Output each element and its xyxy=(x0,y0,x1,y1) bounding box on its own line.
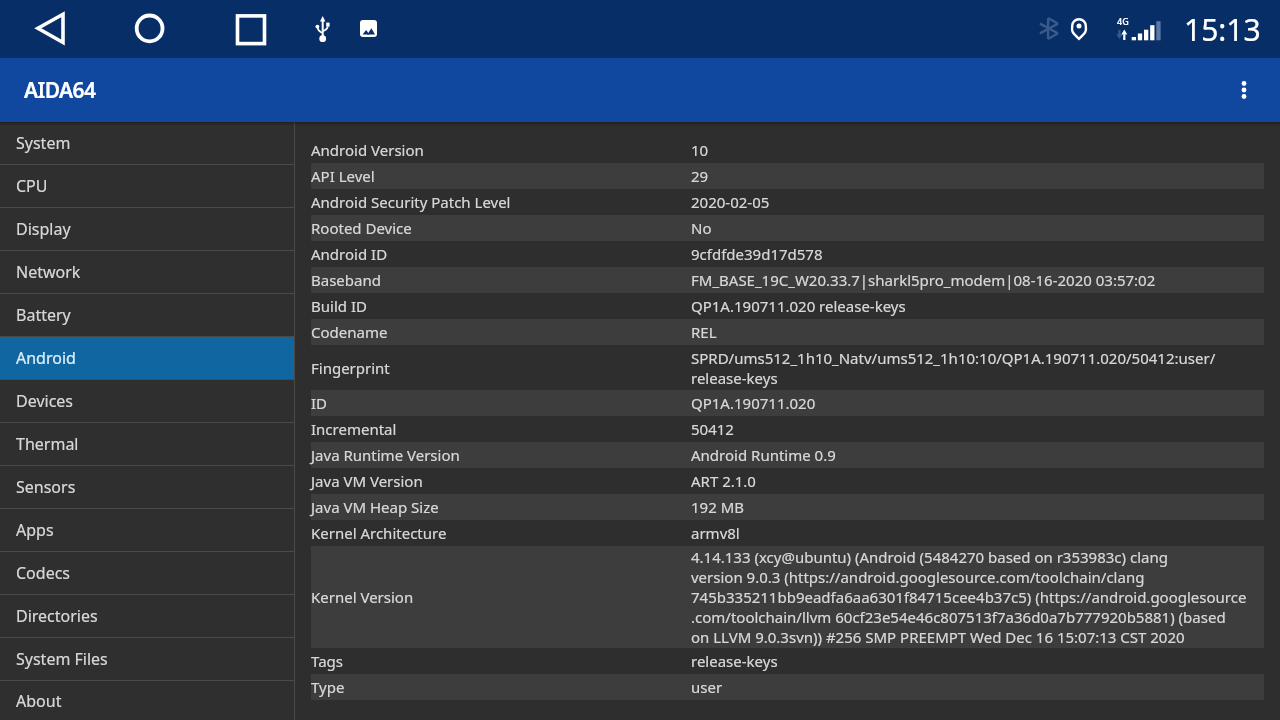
other: Bluetooth off xyxy=(1040,18,1058,39)
staticText: 50412 xyxy=(691,419,734,439)
staticText: QP1A.190711.020 xyxy=(691,393,816,413)
staticText: Display xyxy=(16,218,71,240)
button[interactable]: Codecs xyxy=(0,552,294,594)
button[interactable]: CPU xyxy=(0,165,294,207)
button[interactable]: Incremental xyxy=(311,416,1264,442)
staticText: Codename xyxy=(311,322,691,342)
staticText: QP1A.190711.020 release-keys xyxy=(691,296,906,316)
button[interactable]: Codename xyxy=(311,319,1264,345)
button[interactable]: Android Security Patch Level xyxy=(311,189,1264,215)
button[interactable]: Home xyxy=(128,6,172,50)
staticText: Codecs xyxy=(16,562,71,584)
button[interactable]: Recent apps xyxy=(228,6,272,50)
button[interactable]: Kernel Version xyxy=(311,546,1264,648)
staticText: About xyxy=(16,690,62,712)
other: USB connected xyxy=(310,14,336,44)
staticText: Android xyxy=(16,347,76,369)
staticText: 4.14.133 (xcy@ubuntu) (Android (5484270 … xyxy=(691,547,1168,567)
staticText: FM_BASE_19C_W20.33.7|sharkl5pro_modem|08… xyxy=(691,270,1156,290)
button[interactable]: Build ID xyxy=(311,293,1264,319)
button[interactable]: Android Version xyxy=(311,137,1264,163)
button[interactable]: Java VM Heap Size xyxy=(311,494,1264,520)
staticText: Directories xyxy=(16,605,98,627)
staticText: Build ID xyxy=(311,296,691,316)
staticText: Android Runtime 0.9 xyxy=(691,445,836,465)
staticText: API Level xyxy=(311,166,691,186)
staticText: 745b335211bb9eadfa6aa6301f84715cee4b37c5… xyxy=(691,587,1247,607)
staticText: 15:13 xyxy=(1184,9,1261,50)
button[interactable]: About xyxy=(0,681,294,720)
staticText: 4G xyxy=(1117,15,1129,27)
button[interactable]: Display xyxy=(0,208,294,250)
staticText: 2020-02-05 xyxy=(691,192,770,212)
other: Screenshot captured xyxy=(360,20,377,37)
staticText: Java VM Version xyxy=(311,471,691,491)
staticText: 9cfdfde39d17d578 xyxy=(691,244,823,264)
staticText: ID xyxy=(311,393,691,413)
button[interactable]: API Level xyxy=(311,163,1264,189)
staticText: Incremental xyxy=(311,419,691,439)
staticText: System Files xyxy=(16,648,108,670)
staticText: Kernel Architecture xyxy=(311,523,691,543)
staticText: Network xyxy=(16,261,81,283)
button[interactable]: Android ID xyxy=(311,241,1264,267)
staticText: Android ID xyxy=(311,244,691,264)
button[interactable]: Thermal xyxy=(0,423,294,465)
staticText: AIDA64 xyxy=(24,76,96,105)
button[interactable]: System xyxy=(0,122,294,164)
button[interactable]: Tags xyxy=(311,648,1264,674)
staticText: Java VM Heap Size xyxy=(311,497,691,517)
staticText: Kernel Version xyxy=(311,587,691,607)
button[interactable]: Type xyxy=(311,674,1264,700)
button[interactable]: Directories xyxy=(0,595,294,637)
other: Location on xyxy=(1071,18,1087,40)
button[interactable]: Android xyxy=(0,337,294,379)
staticText: user xyxy=(691,677,723,697)
button[interactable]: Apps xyxy=(0,509,294,551)
other: Mobile signal 4G xyxy=(1116,20,1168,42)
staticText: Tags xyxy=(311,651,691,671)
staticText: Android Security Patch Level xyxy=(311,192,691,212)
staticText: System xyxy=(16,132,71,154)
staticText: on LLVM 9.0.3svn)) #256 SMP PREEMPT Wed … xyxy=(691,627,1185,647)
staticText: CPU xyxy=(16,175,48,197)
button[interactable]: Back xyxy=(28,6,72,50)
button[interactable]: Rooted Device xyxy=(311,215,1264,241)
staticText: 192 MB xyxy=(691,497,744,517)
staticText: SPRD/ums512_1h10_Natv/ums512_1h10:10/QP1… xyxy=(691,348,1216,368)
staticText: REL xyxy=(691,322,717,342)
button[interactable]: Devices xyxy=(0,380,294,422)
staticText: release-keys xyxy=(691,368,778,388)
staticText: Java Runtime Version xyxy=(311,445,691,465)
staticText: version 9.0.3 (https://android.googlesou… xyxy=(691,567,1145,587)
button[interactable]: More options xyxy=(1226,72,1262,108)
staticText: Thermal xyxy=(16,433,79,455)
button[interactable]: Kernel Architecture xyxy=(311,520,1264,546)
staticText: release-keys xyxy=(691,651,778,671)
button[interactable]: Java VM Version xyxy=(311,468,1264,494)
button[interactable]: Java Runtime Version xyxy=(311,442,1264,468)
button[interactable]: Battery xyxy=(0,294,294,336)
staticText: Apps xyxy=(16,519,54,541)
button[interactable]: Network xyxy=(0,251,294,293)
staticText: Battery xyxy=(16,304,71,326)
staticText: armv8l xyxy=(691,523,740,543)
staticText: 29 xyxy=(691,166,709,186)
staticText: .com/toolchain/llvm 60cf23e54e46c807513f… xyxy=(691,607,1226,627)
staticText: Android Version xyxy=(311,140,691,160)
button[interactable]: ID xyxy=(311,390,1264,416)
button[interactable]: Baseband xyxy=(311,267,1264,293)
staticText: ART 2.1.0 xyxy=(691,471,756,491)
staticText: Rooted Device xyxy=(311,218,691,238)
staticText: 10 xyxy=(691,140,709,160)
staticText: Devices xyxy=(16,390,74,412)
button[interactable]: Fingerprint xyxy=(311,345,1264,390)
staticText: No xyxy=(691,218,712,238)
staticText: Type xyxy=(311,677,691,697)
staticText: Fingerprint xyxy=(311,358,691,378)
staticText: Baseband xyxy=(311,270,691,290)
button[interactable]: System Files xyxy=(0,638,294,680)
button[interactable]: Sensors xyxy=(0,466,294,508)
staticText: Sensors xyxy=(16,476,76,498)
